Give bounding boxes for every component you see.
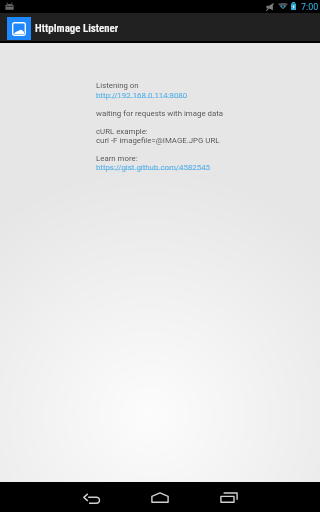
staticText: 7:00	[301, 2, 319, 12]
button[interactable]: Listening on http://192.168.0.114:8080 w…	[96, 81, 224, 171]
button[interactable]: Recents	[202, 482, 256, 512]
button[interactable]: Home	[133, 482, 187, 512]
button[interactable]: HttpImage Listener app icon	[7, 17, 31, 40]
staticText: HttpImage Listener	[35, 22, 119, 35]
button[interactable]: Back	[65, 482, 119, 512]
